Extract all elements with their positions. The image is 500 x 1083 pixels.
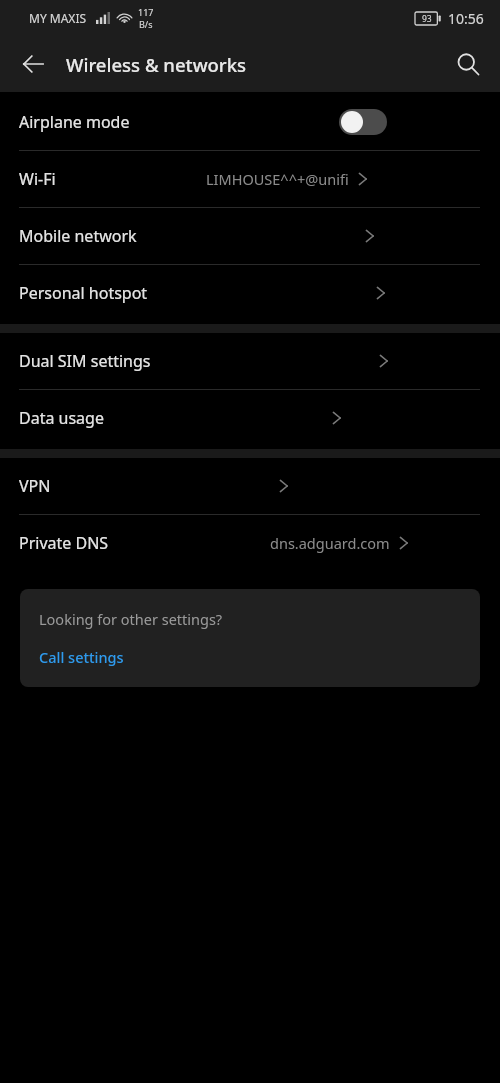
button[interactable]: Looking for other settings?: [20, 589, 480, 687]
staticText: Dual SIM settings: [19, 350, 151, 372]
staticText: dns.adguard.com: [270, 533, 390, 553]
button[interactable]: Dual SIM settings: [0, 333, 500, 389]
button[interactable]: Mobile network: [0, 208, 500, 264]
staticText: LIMHOUSE^^+@unifi: [206, 169, 349, 189]
staticText: Mobile network: [19, 225, 137, 247]
staticText: B/s: [139, 18, 153, 30]
button[interactable]: Data usage: [0, 390, 500, 446]
button[interactable]: Personal hotspot: [0, 265, 500, 321]
staticText: Data usage: [19, 407, 104, 429]
staticText: Call settings: [39, 647, 124, 667]
staticText: Looking for other settings?: [39, 609, 223, 629]
button[interactable]: Wi-Fi: [0, 151, 500, 207]
button[interactable]: Airplane mode toggle: [339, 109, 387, 135]
button[interactable]: VPN: [0, 458, 500, 514]
button[interactable]: Search: [444, 40, 492, 88]
staticText: Airplane mode: [19, 111, 130, 133]
button[interactable]: Airplane mode: [0, 94, 500, 150]
staticText: MY MAXIS: [29, 10, 87, 26]
staticText: 10:56: [448, 9, 484, 28]
staticText: Personal hotspot: [19, 282, 148, 304]
button[interactable]: Back: [10, 41, 56, 87]
button[interactable]: Private DNS: [0, 515, 500, 571]
staticText: VPN: [19, 475, 51, 497]
staticText: 93: [422, 13, 432, 25]
staticText: 117: [138, 6, 154, 18]
staticText: Wireless & networks: [66, 52, 247, 77]
staticText: Private DNS: [19, 532, 109, 554]
staticText: Wi-Fi: [19, 168, 56, 190]
